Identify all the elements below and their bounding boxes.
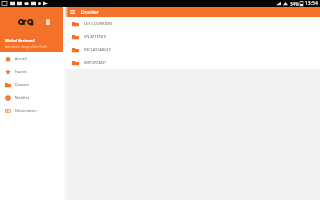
button[interactable]: Favoris	[0, 65, 64, 78]
staticText: Favoris	[15, 69, 27, 74]
button[interactable]: IMPORTANT	[64, 56, 320, 69]
staticText: Michel Bertrand	[5, 38, 35, 43]
button[interactable]: INCLASSABLES	[64, 43, 320, 56]
staticText: 34%	[290, 1, 299, 7]
staticText: 13:54	[305, 0, 318, 7]
staticText: INCLASSABLES	[84, 47, 111, 52]
button[interactable]: LES COURRIERS	[64, 17, 320, 30]
staticText: Dossier	[81, 9, 99, 16]
staticText: Dossiers	[15, 82, 30, 87]
staticText: Modifies	[15, 95, 30, 100]
button[interactable]: EN ATTENTE	[64, 30, 320, 43]
staticText: Déconnexion	[15, 108, 37, 113]
staticText: Adresse de Usagers Mon Profil	[5, 45, 47, 49]
button[interactable]: Open navigation menu	[68, 8, 76, 16]
staticText: EN ATTENTE	[84, 34, 107, 39]
button[interactable]: Accueil	[0, 52, 64, 65]
staticText: Accueil	[15, 56, 27, 61]
staticText: IMPORTANT	[84, 60, 107, 65]
staticText: LES COURRIERS	[84, 21, 113, 26]
button[interactable]: Déconnexion	[0, 104, 64, 117]
button[interactable]: Modifies	[0, 91, 64, 104]
button[interactable]: Dossiers	[0, 78, 64, 91]
